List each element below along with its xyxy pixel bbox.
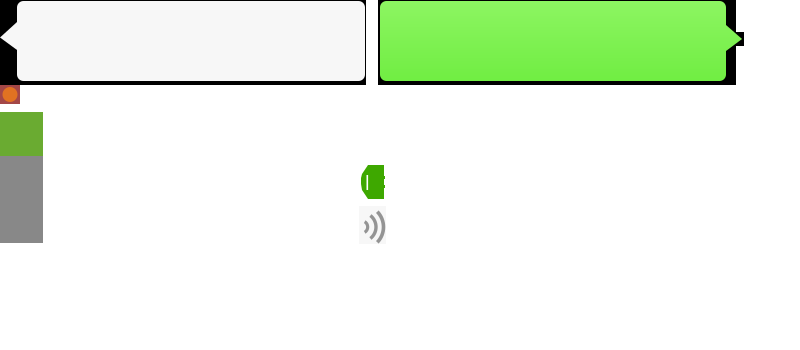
button[interactable]: Incoming message <box>0 0 366 85</box>
button[interactable]: Outgoing message <box>378 0 744 85</box>
